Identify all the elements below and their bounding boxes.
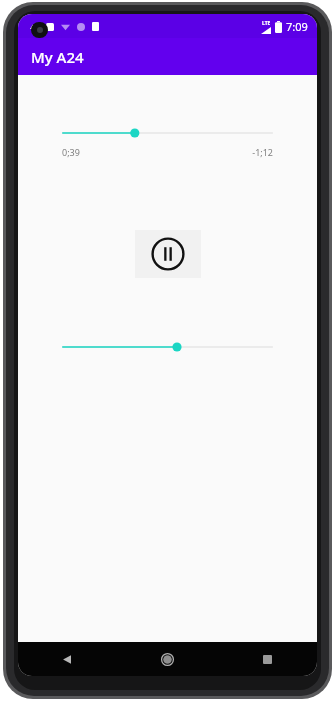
button[interactable]: Back bbox=[18, 642, 117, 676]
staticText: My A24 bbox=[31, 47, 84, 67]
button[interactable]: Home bbox=[117, 642, 217, 676]
staticText: -1;12 bbox=[252, 146, 273, 158]
button[interactable]: Pause bbox=[135, 230, 201, 278]
button[interactable]: Recent apps bbox=[217, 642, 317, 676]
button[interactable]: Seek position bbox=[62, 123, 273, 143]
staticText: LTE bbox=[262, 20, 271, 27]
button[interactable]: Volume bbox=[62, 337, 273, 357]
staticText: 7:09 bbox=[286, 19, 308, 34]
staticText: 0;39 bbox=[62, 146, 80, 158]
